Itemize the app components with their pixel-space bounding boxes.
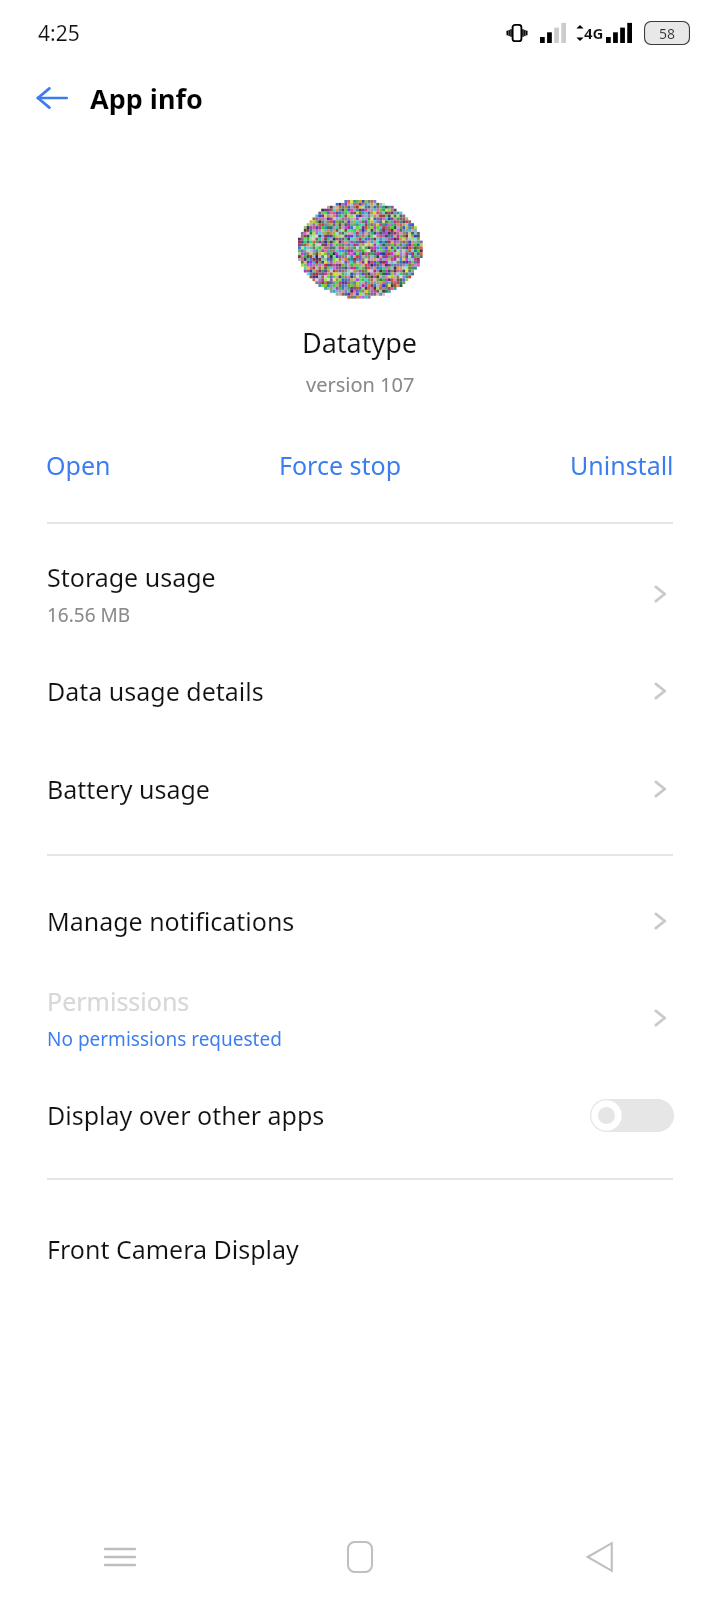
- button[interactable]: Storage usage: [0, 546, 720, 642]
- button[interactable]: Recent apps: [0, 1514, 240, 1600]
- staticText: Uninstall: [570, 448, 674, 482]
- button[interactable]: Back: [480, 1514, 720, 1600]
- staticText: Data usage details: [47, 674, 264, 708]
- staticText: version 107: [306, 371, 415, 398]
- staticText: Open: [46, 448, 111, 482]
- button[interactable]: Back: [24, 70, 80, 126]
- staticText: 16.56 MB: [47, 602, 131, 628]
- staticText: Storage usage: [47, 560, 216, 594]
- button[interactable]: Data usage details: [0, 642, 720, 740]
- button[interactable]: Uninstall: [570, 448, 674, 482]
- staticText: Battery usage: [47, 772, 210, 806]
- staticText: Permissions: [47, 984, 190, 1018]
- staticText: 58: [659, 24, 676, 43]
- button[interactable]: Front Camera Display: [0, 1200, 720, 1298]
- button[interactable]: Force stop: [279, 448, 402, 482]
- staticText: Display over other apps: [47, 1098, 325, 1132]
- button[interactable]: Battery usage: [0, 740, 720, 838]
- button[interactable]: Home: [240, 1514, 480, 1600]
- staticText: Force stop: [279, 448, 402, 482]
- button[interactable]: Open: [46, 448, 111, 482]
- staticText: Datatype: [302, 324, 418, 361]
- staticText: No permissions requested: [47, 1026, 282, 1052]
- staticText: App info: [90, 80, 203, 117]
- staticText: 4:25: [38, 19, 80, 48]
- button[interactable]: Manage notifications: [0, 872, 720, 970]
- button[interactable]: Display over other apps: [0, 1066, 720, 1164]
- staticText: 4G: [584, 23, 604, 43]
- staticText: Manage notifications: [47, 904, 295, 938]
- button[interactable]: Permissions: [0, 970, 720, 1066]
- staticText: Front Camera Display: [47, 1232, 299, 1266]
